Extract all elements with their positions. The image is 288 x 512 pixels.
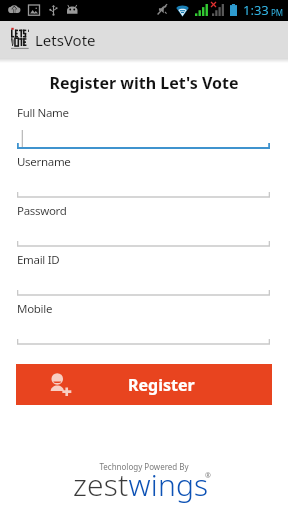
staticText: 1:33 xyxy=(243,1,269,19)
staticText: Register with Let's Vote xyxy=(0,72,288,94)
staticText: Username xyxy=(17,154,71,170)
button[interactable]: LetsVote home xyxy=(0,21,288,58)
staticText: ® xyxy=(205,471,211,481)
button[interactable]: Register xyxy=(16,364,272,405)
staticText: Email ID xyxy=(17,252,60,268)
staticText: zestwings xyxy=(73,464,209,505)
staticText: Register xyxy=(128,374,195,396)
staticText: Password xyxy=(17,203,67,219)
staticText: Technology Powered By xyxy=(0,461,288,472)
staticText: PM xyxy=(271,7,284,18)
staticText: LetsVote xyxy=(35,30,96,50)
staticText: Mobile xyxy=(17,301,53,317)
staticText: Full Name xyxy=(17,105,69,121)
